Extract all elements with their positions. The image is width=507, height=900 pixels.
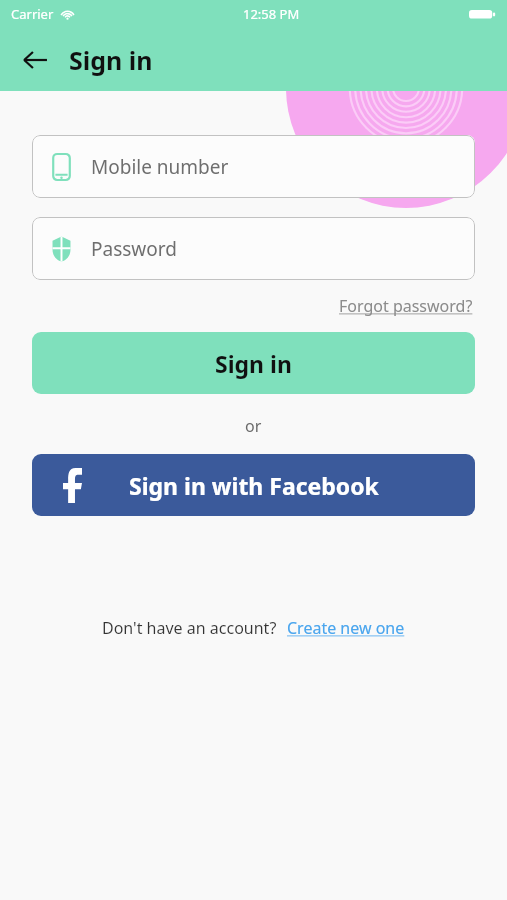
staticText: Sign in with Facebook — [129, 470, 379, 501]
staticText: Don't have an account? — [102, 617, 277, 639]
staticText: Carrier — [11, 5, 54, 23]
staticText: Mobile number — [91, 154, 229, 180]
staticText: Password — [91, 236, 177, 262]
staticText: Sign in — [215, 348, 292, 379]
button[interactable]: Back — [13, 38, 57, 82]
staticText: Sign in — [69, 43, 153, 77]
staticText: 12:58 PM — [243, 5, 300, 23]
button[interactable]: Password — [32, 217, 475, 280]
staticText: or — [245, 415, 262, 437]
staticText: Create new one — [287, 617, 405, 639]
button[interactable]: Create new one — [287, 617, 405, 639]
button[interactable]: Sign in — [32, 332, 475, 394]
staticText: Forgot password? — [339, 295, 473, 317]
button[interactable]: Forgot password? — [337, 292, 475, 320]
button[interactable]: Sign in with Facebook — [32, 454, 475, 516]
button[interactable]: Mobile number — [32, 135, 475, 198]
